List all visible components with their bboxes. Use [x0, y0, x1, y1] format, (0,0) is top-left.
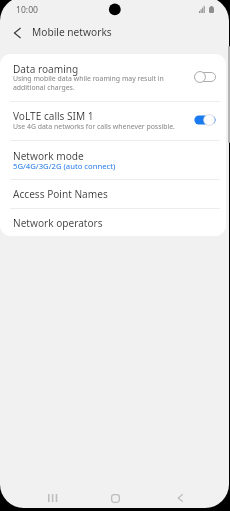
staticText: Network mode [13, 149, 84, 163]
button[interactable]: Network operators [0, 208, 226, 236]
button[interactable]: Network mode [0, 140, 226, 179]
staticText: Network operators [13, 216, 103, 230]
button[interactable]: Access Point Names [0, 179, 226, 208]
staticText: Using mobile data while roaming may resu… [13, 74, 164, 92]
button[interactable]: VoLTE calls SIM 1 [0, 101, 226, 140]
button[interactable]: Navigate up [6, 21, 29, 44]
button[interactable]: Back [161, 484, 199, 510]
staticText: VoLTE calls SIM 1 [13, 109, 94, 123]
button[interactable]: On [194, 113, 218, 127]
staticText: Use 4G data networks for calls whenever … [13, 122, 175, 131]
button[interactable]: Data roaming [0, 54, 226, 101]
staticText: 10:00 [16, 4, 38, 16]
staticText: Data roaming [13, 62, 79, 76]
staticText: Access Point Names [13, 187, 108, 201]
button[interactable]: Home [96, 484, 134, 510]
staticText: Mobile networks [32, 25, 112, 39]
button[interactable]: Off [194, 70, 218, 84]
button[interactable]: Recents [33, 484, 71, 510]
staticText: 5G/4G/3G/2G (auto connect) [13, 161, 116, 171]
